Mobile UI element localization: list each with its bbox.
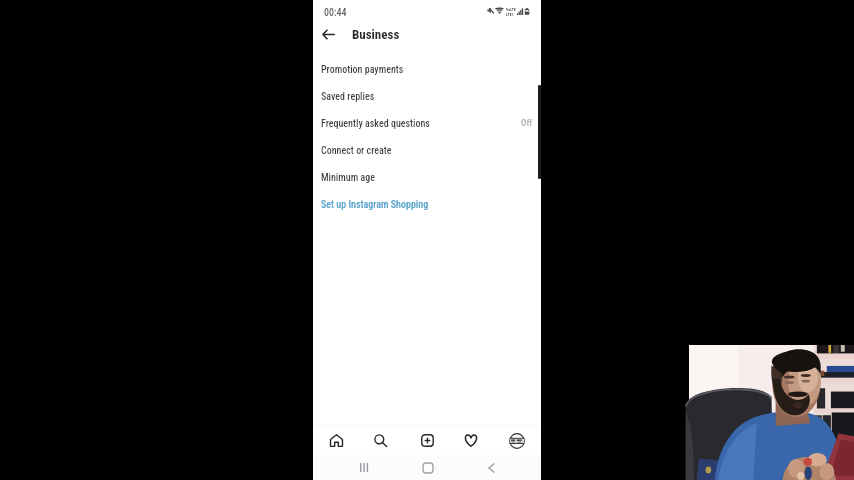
button[interactable]: Create: [406, 426, 448, 455]
staticText: Connect or create: [321, 145, 392, 157]
button[interactable]: Connect or create: [313, 137, 541, 164]
staticText: Saved replies: [321, 91, 375, 103]
button[interactable]: Promotion payments: [313, 56, 541, 83]
button[interactable]: Set up Instagram Shopping: [313, 191, 541, 218]
staticText: Business: [352, 27, 400, 42]
staticText: 00:44: [324, 7, 347, 19]
button[interactable]: Home: [410, 455, 446, 480]
staticText: LTE1: [506, 12, 514, 17]
button[interactable]: Activity: [450, 426, 492, 455]
button[interactable]: Back: [473, 455, 509, 480]
button[interactable]: Recent apps: [346, 455, 382, 480]
staticText: Set up Instagram Shopping: [321, 199, 429, 211]
button[interactable]: Frequently asked questions: [313, 110, 541, 137]
staticText: Frequently asked questions: [321, 118, 430, 130]
button[interactable]: Saved replies: [313, 83, 541, 110]
button[interactable]: Minimum age: [313, 164, 541, 191]
button[interactable]: Profile: [496, 426, 538, 455]
button[interactable]: Search: [359, 426, 401, 455]
button[interactable]: Home: [315, 426, 357, 455]
staticText: Promotion payments: [321, 64, 404, 76]
staticText: VoLTE: [506, 7, 516, 12]
staticText: Minimum age: [321, 172, 375, 184]
button[interactable]: Back: [317, 23, 339, 45]
staticText: Off: [521, 118, 533, 129]
